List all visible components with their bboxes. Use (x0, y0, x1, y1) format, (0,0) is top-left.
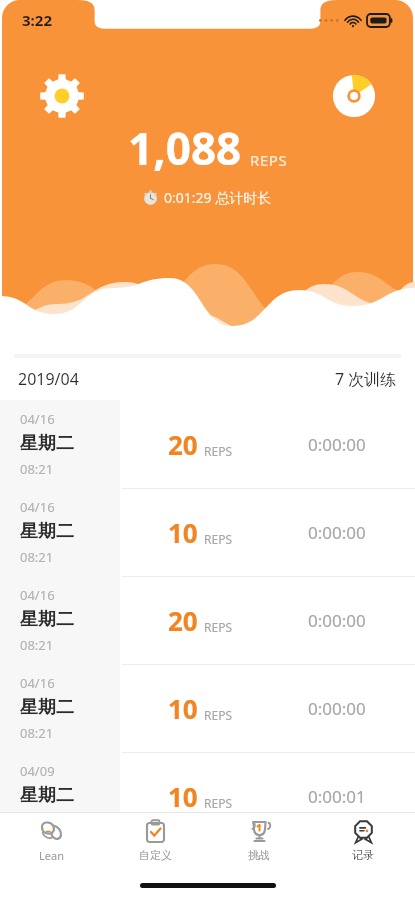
staticText: 04/16 (20, 586, 55, 604)
staticText: 08:21 (20, 548, 54, 566)
staticText: 10 (168, 515, 198, 550)
staticText: 7 次训练 (335, 368, 397, 390)
staticText: 2019/04 (18, 368, 79, 390)
button[interactable]: Lean (0, 812, 103, 870)
button[interactable]: Settings (38, 72, 86, 120)
staticText: 08:21 (20, 460, 54, 478)
staticText: REPS (204, 443, 232, 459)
staticText: REPS (204, 531, 232, 547)
staticText: 0:00:00 (308, 697, 366, 720)
staticText: 3:22 (22, 10, 52, 30)
button[interactable]: 记录 (311, 812, 415, 870)
staticText: REPS (204, 707, 232, 723)
button[interactable]: Statistics (330, 72, 378, 120)
staticText: 0:00:00 (308, 521, 366, 544)
staticText: 星期二 (20, 432, 74, 455)
staticText: REPS (250, 150, 288, 170)
staticText: 0:01:29 总计时长 (164, 188, 272, 207)
staticText: REPS (204, 795, 232, 811)
staticText: 08:21 (20, 724, 54, 742)
staticText: 20 (168, 603, 198, 638)
staticText: 自定义 (139, 848, 172, 862)
button[interactable]: 04/16 (0, 400, 415, 488)
button[interactable]: 自定义 (103, 812, 207, 870)
staticText: Lean (39, 848, 64, 863)
staticText: 04/09 (20, 762, 55, 780)
staticText: 星期二 (20, 520, 74, 543)
button[interactable]: 04/16 (0, 664, 415, 752)
staticText: 0:00:00 (308, 433, 366, 456)
button[interactable]: 04/16 (0, 576, 415, 664)
staticText: 1,088 (128, 118, 242, 178)
staticText: REPS (204, 619, 232, 635)
button[interactable]: 04/09 (0, 752, 415, 840)
staticText: 08:21 (20, 636, 54, 654)
staticText: 08:21 (20, 812, 54, 830)
staticText: 星期二 (20, 696, 74, 719)
staticText: 记录 (352, 848, 374, 862)
staticText: 0:00:00 (308, 609, 366, 632)
staticText: 10 (168, 779, 198, 814)
staticText: 04/16 (20, 674, 55, 692)
staticText: 10 (168, 691, 198, 726)
staticText: 04/16 (20, 410, 55, 428)
staticText: 0:00:01 (308, 785, 366, 808)
button[interactable]: 04/16 (0, 488, 415, 576)
staticText: 星期二 (20, 784, 74, 807)
staticText: 04/16 (20, 498, 55, 516)
staticText: 星期二 (20, 608, 74, 631)
staticText: 挑战 (248, 848, 270, 862)
staticText: 20 (168, 427, 198, 462)
button[interactable]: 挑战 (207, 812, 311, 870)
